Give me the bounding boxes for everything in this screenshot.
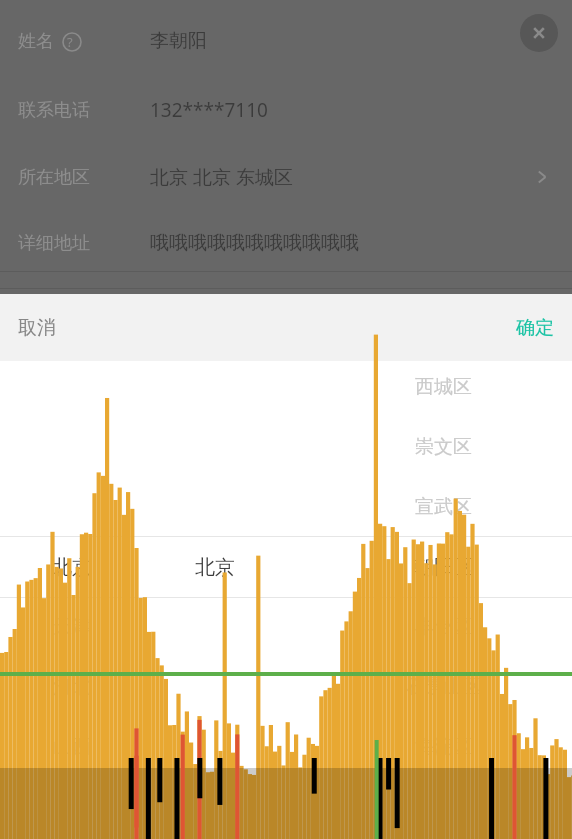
staticText: 西城区 bbox=[415, 375, 472, 399]
staticText: 李朝阳 bbox=[150, 29, 207, 53]
staticText: 姓名 bbox=[18, 30, 54, 53]
button[interactable]: 朝阳区 bbox=[372, 550, 515, 584]
button[interactable]: 详细地址 bbox=[0, 214, 572, 272]
staticText: 联系电话 bbox=[18, 99, 90, 122]
button[interactable]: 宣武区 bbox=[372, 490, 515, 524]
button[interactable]: 石景山区 bbox=[372, 670, 515, 704]
staticText: 132****7110 bbox=[150, 97, 268, 123]
button[interactable]: 天津 bbox=[0, 610, 143, 644]
button[interactable]: 河北 bbox=[0, 670, 143, 704]
staticText: 北京 bbox=[52, 555, 92, 580]
button[interactable]: 北京 bbox=[0, 550, 143, 584]
staticText: 详细地址 bbox=[18, 232, 90, 255]
staticText: 宣武区 bbox=[415, 495, 472, 519]
staticText: 河北 bbox=[53, 675, 91, 699]
staticText: 哦哦哦哦哦哦哦哦哦哦哦 bbox=[150, 231, 359, 255]
staticText: 石景山区 bbox=[406, 675, 482, 699]
staticText: 朝阳区 bbox=[414, 555, 474, 580]
staticText: 海淀区 bbox=[415, 735, 472, 759]
staticText: 北京 北京 东城区 bbox=[150, 164, 293, 190]
staticText: 丰台区 bbox=[415, 615, 472, 639]
button[interactable]: 确定 bbox=[516, 316, 554, 340]
button[interactable]: 联系电话 bbox=[0, 81, 572, 139]
button[interactable]: 北京 bbox=[143, 550, 286, 584]
button[interactable]: Close bbox=[520, 14, 558, 52]
staticText: 所在地区 bbox=[18, 166, 90, 189]
button[interactable]: 丰台区 bbox=[372, 610, 515, 644]
button[interactable]: 取消 bbox=[18, 316, 56, 340]
staticText: 确定 bbox=[516, 316, 554, 340]
button[interactable]: 西城区 bbox=[372, 370, 515, 404]
button[interactable]: 海淀区 bbox=[372, 730, 515, 764]
staticText: 山西 bbox=[53, 735, 91, 759]
button[interactable]: 所在地区 bbox=[0, 148, 572, 206]
button[interactable]: 崇文区 bbox=[372, 430, 515, 464]
button[interactable]: 山西 bbox=[0, 730, 143, 764]
staticText: 天津 bbox=[53, 615, 91, 639]
staticText: ? bbox=[67, 33, 73, 51]
button[interactable]: 姓名 bbox=[0, 12, 572, 70]
staticText: 北京 bbox=[195, 555, 235, 580]
staticText: 崇文区 bbox=[415, 435, 472, 459]
staticText: 取消 bbox=[18, 316, 56, 340]
